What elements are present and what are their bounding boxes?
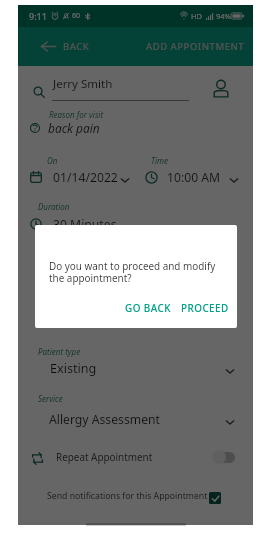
staticText: 10:00 AM [167, 169, 221, 186]
staticText: 01/14/2022 [53, 169, 118, 186]
staticText: HD [191, 11, 203, 21]
button[interactable]: Send notifications for this Appointment [18, 487, 253, 509]
staticText: BACK [63, 40, 90, 53]
staticText: Service [38, 393, 63, 404]
staticText: 60 [72, 11, 81, 21]
staticText: 30 Minutes [53, 216, 117, 233]
staticText: Duration [38, 201, 70, 212]
staticText: Allergy Assessment [49, 411, 160, 428]
button[interactable]: GO BACK [120, 295, 176, 320]
button[interactable]: Allergy Assessment [18, 411, 253, 433]
staticText: Existing [50, 360, 97, 377]
staticText: ADD APPOINTMENT [146, 40, 245, 53]
staticText: Patient type [38, 346, 81, 357]
staticText: PROCEED [181, 301, 229, 314]
button[interactable]: ADD APPOINTMENT [138, 27, 253, 66]
button[interactable]: BACK [37, 27, 94, 66]
staticText: Repeat Appointment [56, 450, 153, 463]
staticText: 9:11 [29, 10, 47, 22]
button[interactable]: Existing [18, 360, 253, 382]
staticText: back pain [48, 120, 100, 136]
button[interactable]: Choose patient [210, 78, 232, 100]
staticText: Reason for visit [49, 109, 104, 120]
staticText: 94% [216, 11, 231, 21]
staticText: Jerry Smith [53, 76, 113, 92]
staticText: GO BACK [125, 301, 171, 314]
staticText: On [47, 155, 58, 166]
button[interactable]: PROCEED [176, 295, 234, 320]
staticText: Do you want to proceed and modify the ap… [49, 259, 221, 285]
staticText: Time [151, 155, 169, 166]
staticText: Send notifications for this Appointment [47, 490, 208, 502]
button[interactable]: Repeat Appointment [18, 446, 253, 470]
